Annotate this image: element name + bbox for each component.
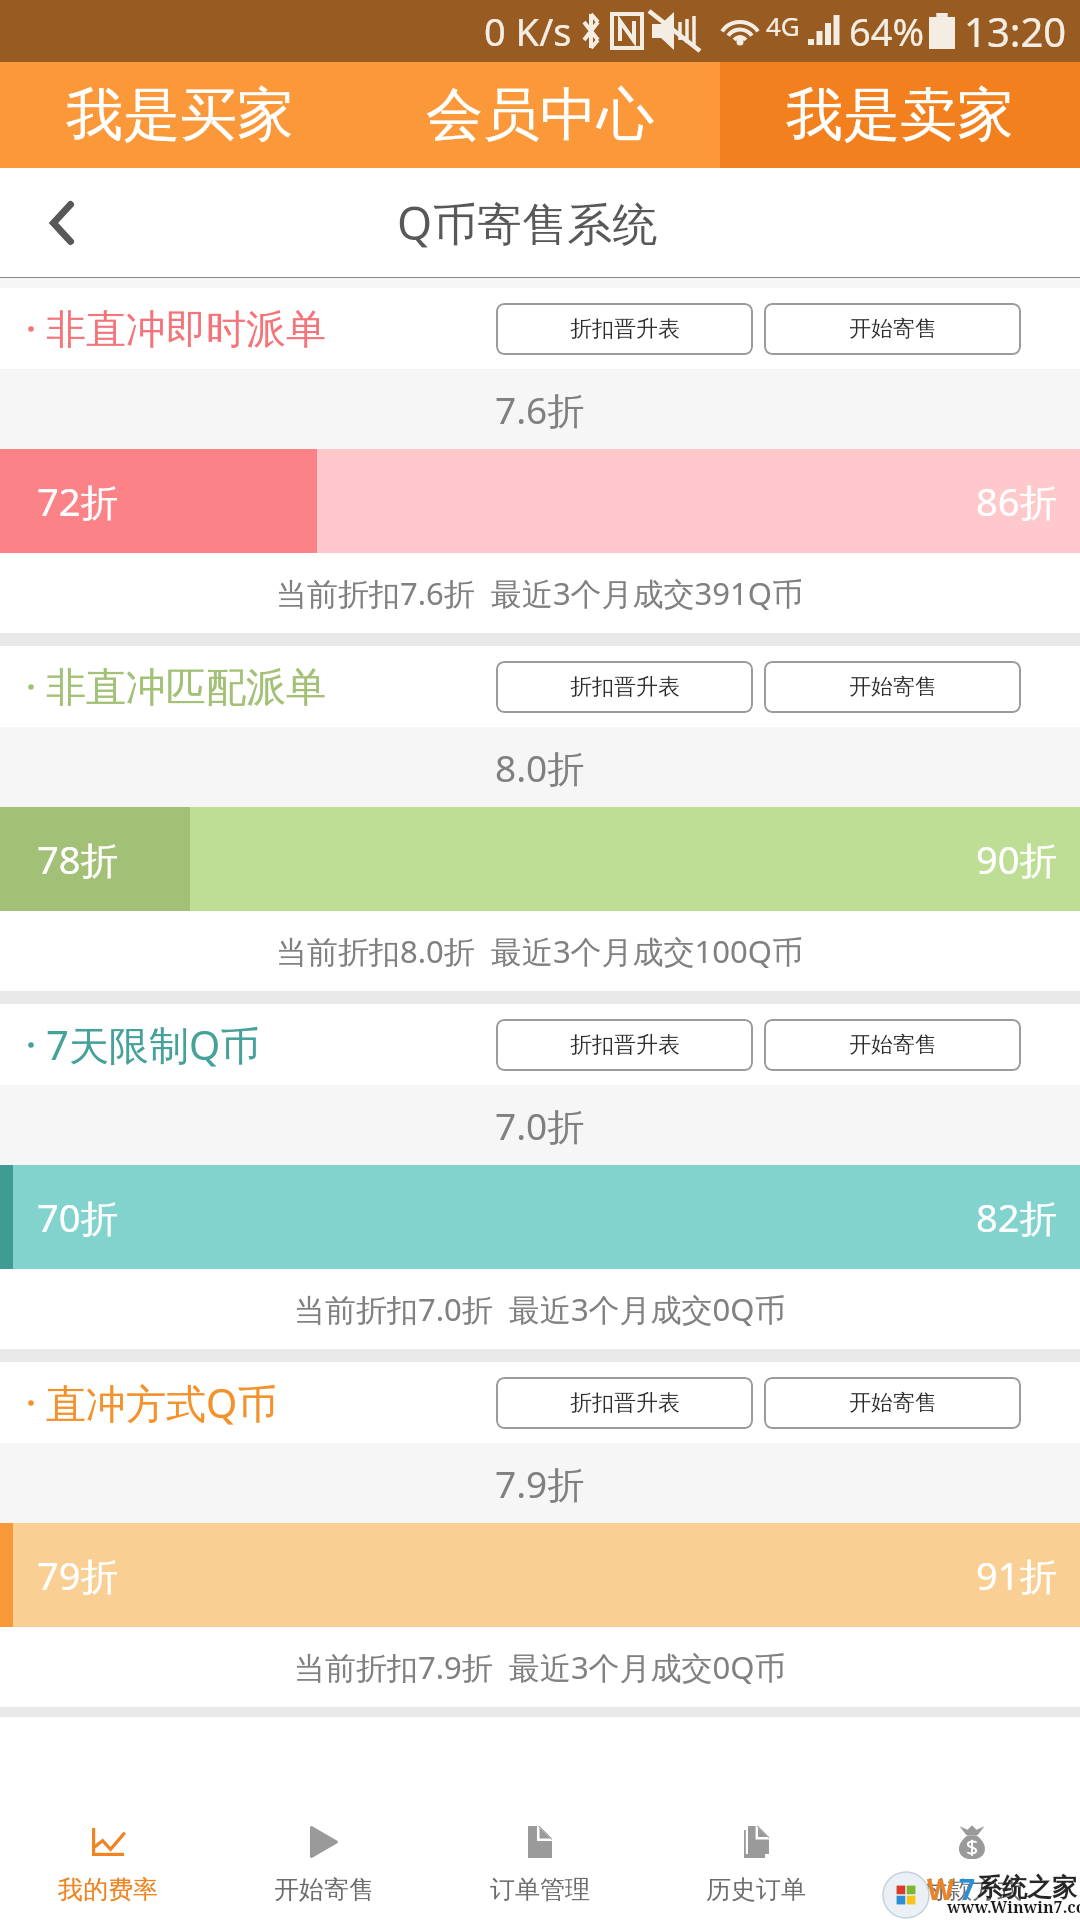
staticText: 非直冲匹配派单 [46,662,326,712]
button[interactable]: 开始寄售 [764,303,1021,355]
staticText: 开始寄售 [849,315,937,343]
staticText: 72折 [37,475,119,527]
staticText: 直冲方式Q币 [46,1375,278,1430]
button[interactable]: 付款方式 [864,1717,1080,1920]
staticText: 64% [849,5,925,57]
staticText: 82折 [976,1191,1058,1243]
staticText: 79折 [37,1549,119,1601]
button[interactable]: 折扣晋升表 [496,661,753,713]
staticText: 开始寄售 [849,673,937,701]
button[interactable]: 历史订单 [648,1717,864,1920]
staticText: 8.0折 [495,742,585,793]
button[interactable]: Back [0,168,120,277]
staticText: 86折 [976,475,1058,527]
staticText: 当前折扣7.6折 最近3个月成交391Q币 [276,572,804,614]
staticText: 当前折扣8.0折 最近3个月成交100Q币 [276,930,804,972]
staticText: www.Winwin7.com [947,1896,1080,1918]
button[interactable]: 开始寄售 [764,1019,1021,1071]
staticText: 91折 [976,1549,1058,1601]
button[interactable]: 折扣晋升表 [496,303,753,355]
staticText: 0 K/s [484,5,572,57]
button[interactable]: 我是卖家 [720,62,1080,168]
staticText: 70折 [37,1191,119,1243]
staticText: 开始寄售 [849,1389,937,1417]
button[interactable]: 开始寄售 [764,661,1021,713]
staticText: 当前折扣7.9折 最近3个月成交0Q币 [294,1646,786,1688]
staticText: 4G [766,8,800,43]
staticText: 系统之家 [977,1872,1077,1903]
button[interactable]: 折扣晋升表 [496,1019,753,1071]
staticText: 我是买家 [66,79,294,151]
staticText: W [927,1870,955,1908]
staticText: 当前折扣7.0折 最近3个月成交0Q币 [294,1288,786,1330]
button[interactable]: 开始寄售 [216,1717,432,1920]
button[interactable]: 折扣晋升表 [496,1377,753,1429]
staticText: 78折 [37,833,119,885]
staticText: 7 [959,1870,976,1908]
button[interactable]: 订单管理 [432,1717,648,1920]
staticText: 7天限制Q币 [46,1017,261,1072]
staticText: 7.0折 [495,1100,585,1151]
staticText: 会员中心 [426,79,654,151]
staticText: 折扣晋升表 [570,1031,680,1059]
staticText: 折扣晋升表 [570,673,680,701]
staticText: 开始寄售 [849,1031,937,1059]
staticText: 开始寄售 [274,1874,374,1905]
staticText: Q币寄售系统 [397,192,658,253]
staticText: 折扣晋升表 [570,1389,680,1417]
staticText: 我是卖家 [786,79,1014,151]
button[interactable]: 我的费率 [0,1717,216,1920]
staticText: 我的费率 [58,1874,158,1905]
staticText: 7.9折 [495,1458,585,1509]
button[interactable]: 开始寄售 [764,1377,1021,1429]
staticText: 订单管理 [490,1874,590,1905]
staticText: 折扣晋升表 [570,315,680,343]
button[interactable]: 我是买家 [0,62,360,168]
button[interactable]: 会员中心 [360,62,720,168]
staticText: 7.6折 [495,384,585,435]
staticText: 90折 [976,833,1058,885]
staticText: 非直冲即时派单 [46,304,326,354]
staticText: 13:20 [964,4,1067,58]
staticText: 历史订单 [706,1874,806,1905]
staticText: 付款方式 [922,1874,1022,1905]
